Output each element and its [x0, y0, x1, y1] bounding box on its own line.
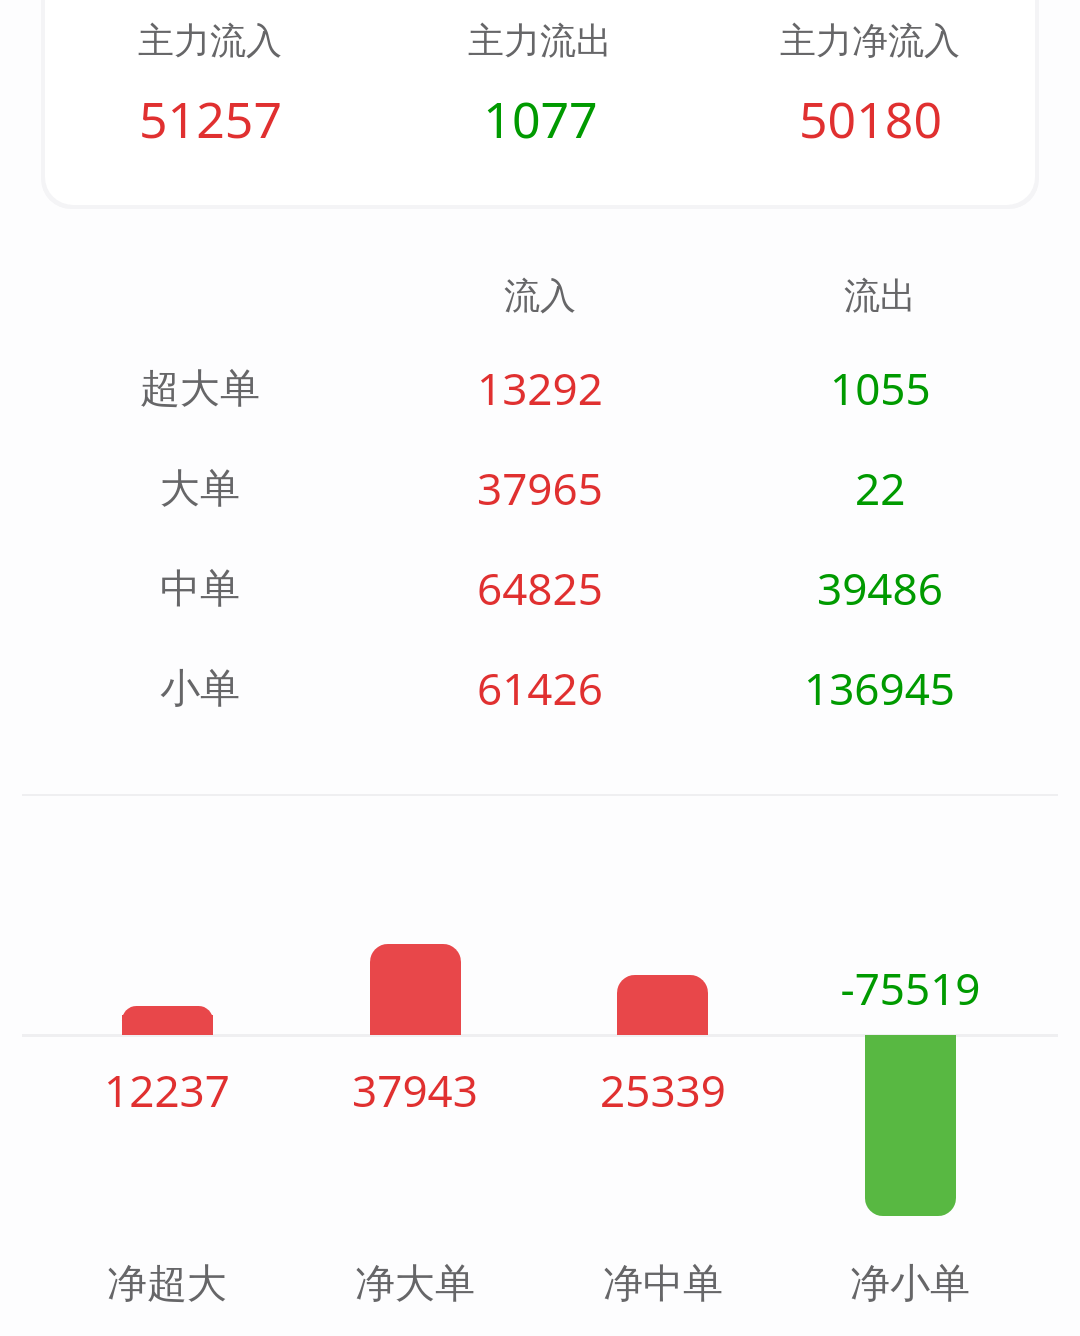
- staticText: 流出: [844, 273, 916, 318]
- staticText: 超大单: [140, 363, 260, 413]
- button[interactable]: 主力流出: [375, 18, 705, 153]
- staticText: 主力流出: [468, 18, 612, 63]
- button[interactable]: 主力流入: [45, 0, 1035, 205]
- button[interactable]: 净大单: [315, 1258, 515, 1308]
- staticText: 主力流入: [138, 18, 282, 63]
- other: Net capital flow bar chart: [0, 0, 1080, 1336]
- staticText: 12237: [104, 1060, 230, 1120]
- button[interactable]: 净小单: [810, 1258, 1010, 1308]
- staticText: 136945: [804, 658, 956, 718]
- staticText: 主力净流入: [780, 18, 960, 63]
- staticText: 64825: [477, 558, 603, 618]
- button[interactable]: 主力净流入: [705, 18, 1035, 153]
- button[interactable]: 净中单: [563, 1258, 763, 1308]
- button[interactable]: 大单: [0, 455, 1080, 521]
- staticText: 39486: [817, 558, 943, 618]
- button[interactable]: 小单: [0, 655, 1080, 721]
- staticText: 51257: [139, 85, 282, 153]
- staticText: -75519: [840, 958, 981, 1018]
- staticText: 61426: [477, 658, 603, 718]
- button[interactable]: 流入: [0, 262, 1080, 328]
- button[interactable]: 超大单: [0, 355, 1080, 421]
- staticText: 中单: [160, 563, 240, 613]
- staticText: 50180: [799, 85, 942, 153]
- staticText: 13292: [477, 358, 603, 418]
- staticText: 流入: [504, 273, 576, 318]
- button[interactable]: 净超大: [67, 1258, 267, 1308]
- staticText: 净超大: [107, 1258, 227, 1308]
- staticText: 25339: [600, 1060, 726, 1120]
- staticText: 37943: [352, 1060, 478, 1120]
- staticText: 净大单: [355, 1258, 475, 1308]
- button[interactable]: 中单: [0, 555, 1080, 621]
- staticText: 净小单: [850, 1258, 970, 1308]
- staticText: 1055: [830, 358, 931, 418]
- staticText: 37965: [477, 458, 603, 518]
- staticText: 22: [855, 458, 906, 518]
- staticText: 净中单: [603, 1258, 723, 1308]
- staticText: 大单: [160, 463, 240, 513]
- button[interactable]: 主力流入: [45, 18, 375, 153]
- staticText: 1077: [483, 85, 598, 153]
- staticText: 小单: [160, 663, 240, 713]
